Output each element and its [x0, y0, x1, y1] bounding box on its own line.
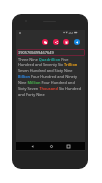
button[interactable]: 3905769499467649 [17, 49, 85, 56]
button[interactable]: Back [29, 142, 35, 150]
button[interactable]: Speak [74, 39, 80, 45]
button[interactable]: Recents [65, 142, 71, 150]
button[interactable]: Share [53, 39, 59, 45]
button[interactable]: Delete [63, 39, 69, 45]
button[interactable]: Home [48, 142, 54, 150]
button[interactable]: Copy [42, 39, 48, 45]
staticText: 3905769499467649 [18, 50, 54, 55]
staticText: Three Nine Quadrillion Five Hundred and … [18, 57, 82, 98]
